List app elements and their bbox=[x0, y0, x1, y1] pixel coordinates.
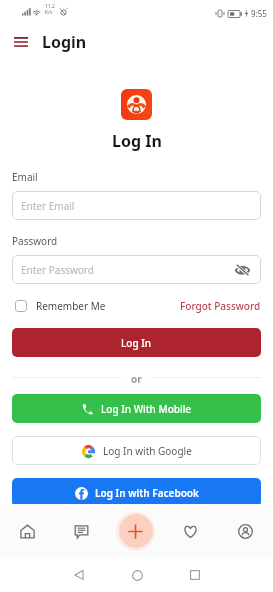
staticText: Log In With Mobile bbox=[101, 402, 192, 416]
button[interactable]: Favorites bbox=[163, 504, 218, 558]
staticText: Login bbox=[42, 31, 87, 53]
staticText: 11.2 K/s bbox=[45, 3, 55, 16]
button[interactable]: Home bbox=[126, 564, 148, 586]
button[interactable]: Forgot Password bbox=[180, 299, 261, 313]
button[interactable]: Remember Me bbox=[12, 299, 106, 313]
staticText: 9:55 bbox=[251, 8, 267, 19]
staticText: or bbox=[131, 372, 142, 386]
staticText: Log In bbox=[121, 336, 152, 350]
button[interactable]: Log In With Mobile bbox=[12, 394, 261, 423]
staticText: Log In bbox=[112, 130, 162, 152]
staticText: Enter Email bbox=[21, 199, 75, 213]
staticText: Forgot Password bbox=[180, 299, 261, 313]
button[interactable]: Enter Password bbox=[12, 255, 261, 284]
staticText: Enter Password bbox=[21, 263, 94, 277]
button[interactable]: Recents bbox=[184, 564, 206, 586]
button[interactable]: Enter Email bbox=[12, 191, 261, 220]
button[interactable]: Messages bbox=[54, 504, 108, 558]
staticText: Password bbox=[12, 234, 58, 248]
button[interactable]: Log In bbox=[12, 328, 261, 357]
staticText: Log In with Google bbox=[103, 444, 192, 458]
button[interactable]: Log In with Facebook bbox=[12, 478, 261, 507]
button[interactable]: Back bbox=[67, 564, 89, 586]
staticText: Log In with Facebook bbox=[95, 486, 199, 500]
button[interactable]: Profile bbox=[218, 504, 273, 558]
staticText: Email bbox=[12, 170, 38, 184]
button[interactable]: Add bbox=[108, 504, 163, 558]
staticText: Remember Me bbox=[36, 299, 106, 313]
button[interactable]: Log In with Google bbox=[12, 436, 261, 465]
button[interactable]: Toggle password visibility bbox=[234, 262, 250, 278]
button[interactable]: Menu bbox=[8, 29, 34, 55]
button[interactable]: Home bbox=[0, 504, 54, 558]
